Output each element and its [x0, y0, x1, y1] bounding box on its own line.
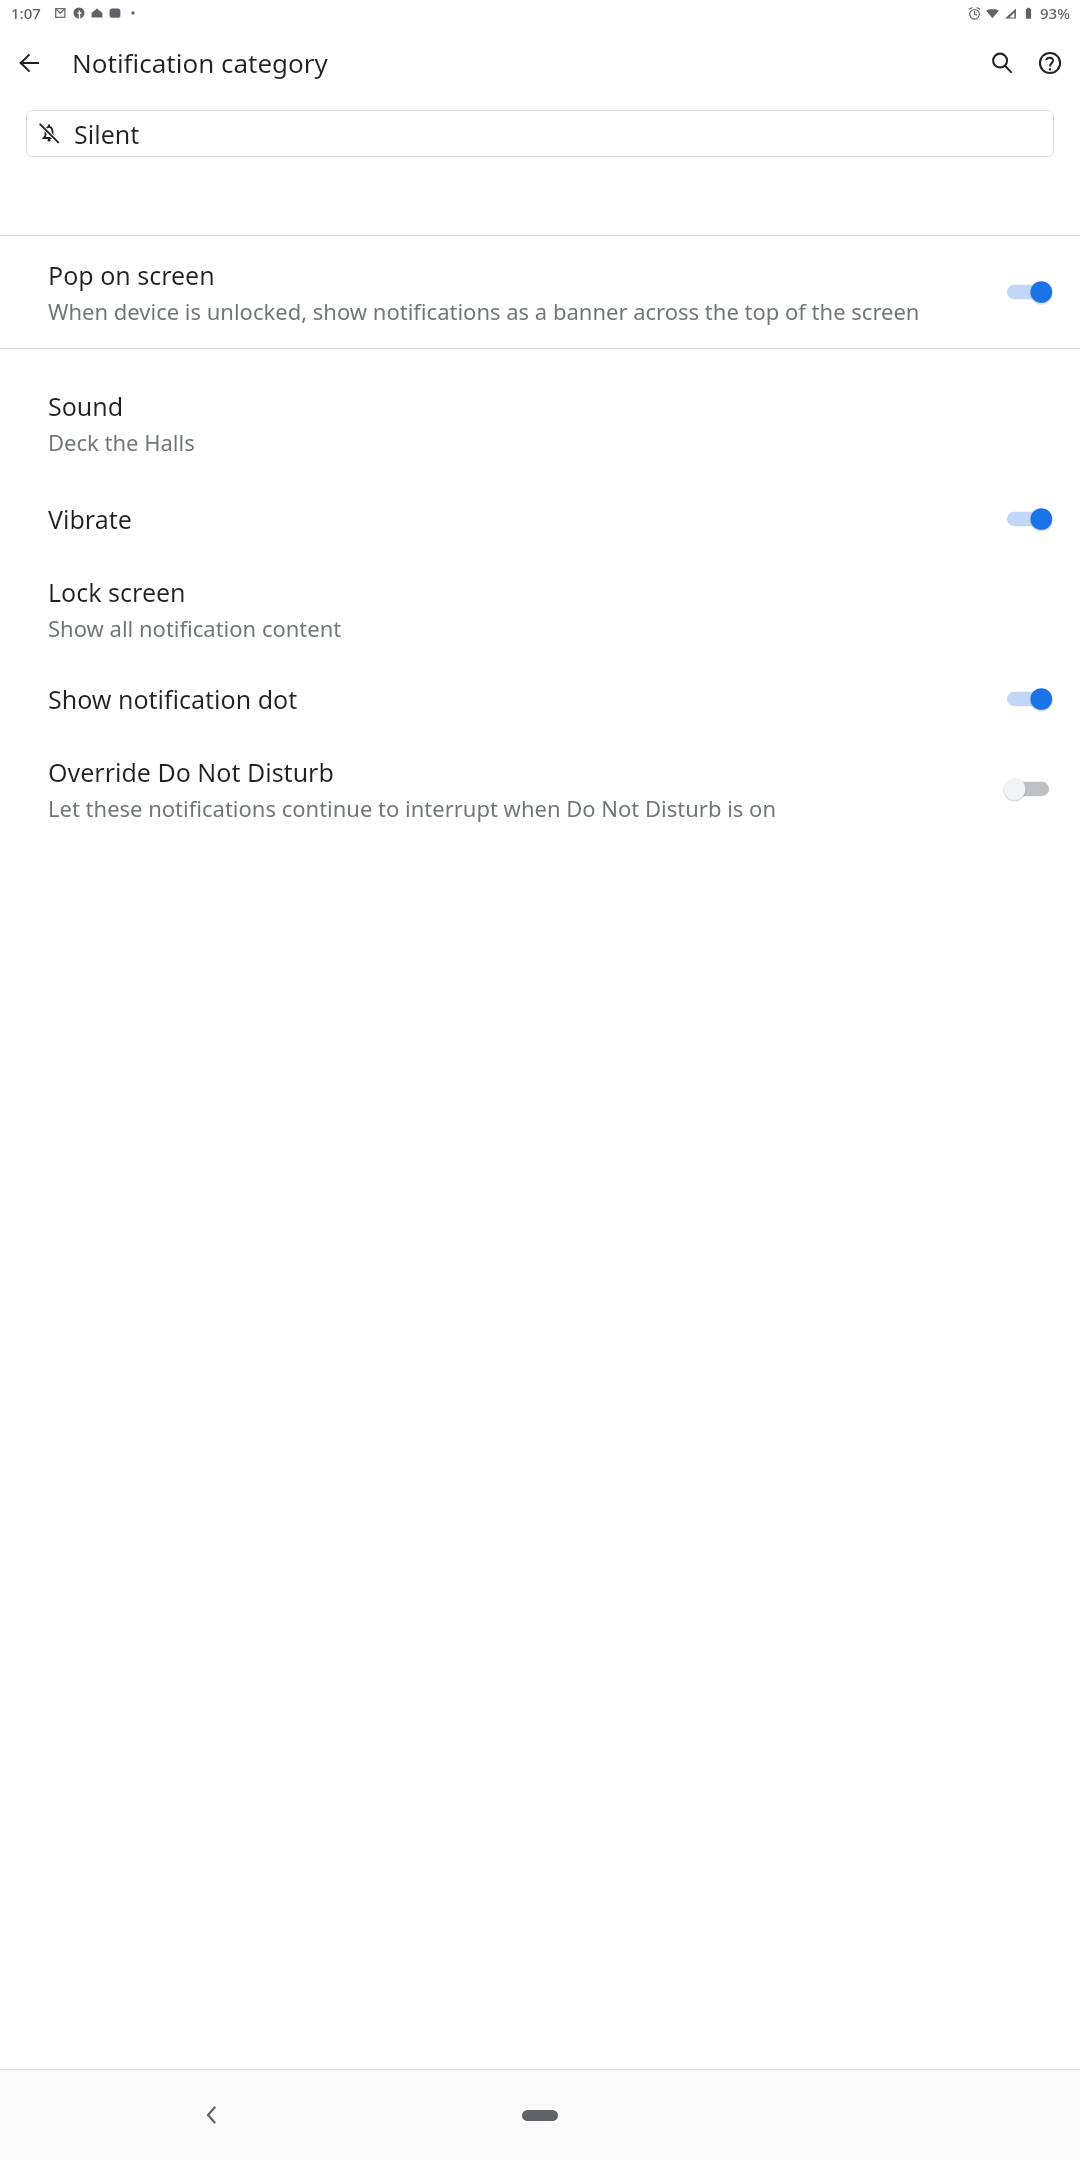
button[interactable]: Back [180, 2083, 244, 2147]
staticText: Show all notification content [48, 613, 342, 643]
button[interactable]: Off [996, 769, 1060, 809]
staticText: Override Do Not Disturb [48, 755, 334, 789]
button[interactable]: Override Do Not Disturb [0, 741, 1080, 845]
button[interactable]: Back [6, 39, 54, 87]
button[interactable]: Vibrate [0, 485, 1080, 561]
button[interactable]: Pop on screen [0, 236, 1080, 348]
staticText: Sound [48, 389, 124, 423]
button[interactable]: Lock screen [0, 561, 1080, 665]
staticText: When device is unlocked, show notificati… [48, 296, 920, 326]
button[interactable]: On [996, 499, 1060, 539]
staticText: Show notification dot [48, 682, 298, 716]
staticText: Deck the Halls [48, 427, 195, 457]
staticText: Silent [74, 117, 140, 151]
button[interactable]: Help [1026, 39, 1074, 87]
staticText: Pop on screen [48, 258, 215, 292]
staticText: Let these notifications continue to inte… [48, 793, 777, 823]
staticText: Lock screen [48, 575, 186, 609]
staticText: Notification category [72, 45, 328, 80]
button[interactable]: Search [978, 39, 1026, 87]
staticText: 1:07 [11, 3, 41, 23]
button[interactable]: Sound [0, 389, 1080, 485]
button[interactable]: Home [490, 2091, 590, 2139]
button[interactable]: On [996, 272, 1060, 312]
button[interactable]: Show notification dot [0, 665, 1080, 741]
button[interactable]: On [996, 679, 1060, 719]
staticText: Vibrate [48, 502, 132, 536]
staticText: 93% [1040, 3, 1070, 23]
button[interactable]: Silent [26, 110, 1054, 157]
